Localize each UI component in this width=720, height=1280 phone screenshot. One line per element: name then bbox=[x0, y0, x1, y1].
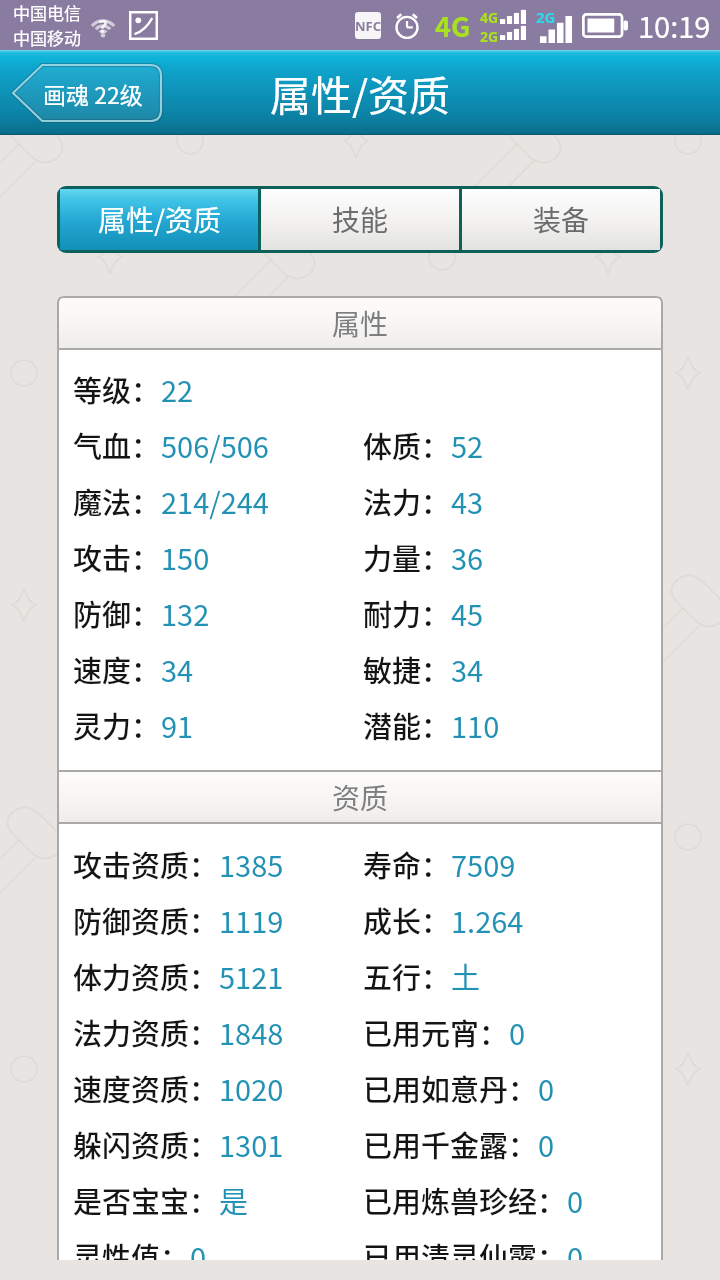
button[interactable]: 属性/资质 bbox=[60, 189, 258, 250]
staticText: 0 bbox=[538, 1067, 555, 1109]
staticText: 属性 bbox=[332, 303, 389, 344]
staticText: 132 bbox=[161, 592, 210, 634]
staticText: 已用如意丹： bbox=[363, 1067, 538, 1109]
staticText: 寿命： bbox=[363, 843, 451, 885]
staticText: 0 bbox=[509, 1011, 526, 1053]
button[interactable]: 返回 画魂 22级 bbox=[11, 63, 163, 123]
staticText: 150 bbox=[161, 536, 210, 578]
staticText: 攻击： bbox=[73, 536, 161, 578]
staticText: 资质 bbox=[332, 777, 389, 818]
staticText: 魔法： bbox=[73, 480, 161, 522]
staticText: 110 bbox=[451, 704, 500, 746]
staticText: 已用千金露： bbox=[363, 1123, 538, 1165]
staticText: 力量： bbox=[363, 536, 451, 578]
staticText: 装备 bbox=[533, 199, 590, 240]
staticText: 躲闪资质： bbox=[73, 1123, 219, 1165]
staticText: 1848 bbox=[219, 1011, 284, 1053]
staticText: 0 bbox=[190, 1235, 207, 1260]
staticText: 中国移动 bbox=[13, 25, 81, 50]
staticText: 是 bbox=[219, 1179, 249, 1221]
staticText: 体力资质： bbox=[73, 955, 219, 997]
button[interactable]: 技能 bbox=[261, 189, 459, 250]
staticText: 体质： bbox=[363, 424, 451, 466]
staticText: 5121 bbox=[219, 955, 284, 997]
staticText: 4G bbox=[480, 8, 499, 27]
staticText: 五行： bbox=[363, 955, 451, 997]
staticText: 潜能： bbox=[363, 704, 451, 746]
staticText: 灵性值： bbox=[73, 1235, 190, 1260]
staticText: 防御： bbox=[73, 592, 161, 634]
staticText: 2G bbox=[536, 7, 556, 27]
staticText: 灵力： bbox=[73, 704, 161, 746]
staticText: 34 bbox=[161, 648, 194, 690]
staticText: 速度资质： bbox=[73, 1067, 219, 1109]
staticText: 成长： bbox=[363, 899, 451, 941]
staticText: 技能 bbox=[332, 199, 389, 240]
staticText: 0 bbox=[567, 1179, 584, 1221]
staticText: 速度： bbox=[73, 648, 161, 690]
staticText: 画魂 22级 bbox=[43, 77, 143, 110]
staticText: 等级： bbox=[73, 368, 161, 410]
staticText: 中国电信 bbox=[13, 0, 81, 25]
staticText: 1301 bbox=[219, 1123, 284, 1165]
staticText: 0 bbox=[538, 1123, 555, 1165]
staticText: 91 bbox=[161, 704, 194, 746]
staticText: 法力资质： bbox=[73, 1011, 219, 1053]
staticText: ? bbox=[99, 15, 108, 38]
staticText: 2G bbox=[480, 27, 499, 42]
staticText: 1020 bbox=[219, 1067, 284, 1109]
staticText: 1385 bbox=[219, 843, 284, 885]
staticText: 45 bbox=[451, 592, 484, 634]
staticText: 43 bbox=[451, 480, 484, 522]
staticText: 506/506 bbox=[161, 424, 269, 466]
button[interactable]: 装备 bbox=[462, 189, 660, 250]
staticText: 10:19 bbox=[638, 4, 711, 46]
staticText: 22 bbox=[161, 368, 194, 410]
staticText: 属性/资质 bbox=[270, 63, 451, 122]
staticText: 属性/资质 bbox=[98, 199, 221, 240]
staticText: 防御资质： bbox=[73, 899, 219, 941]
staticText: 1119 bbox=[219, 899, 284, 941]
staticText: 耐力： bbox=[363, 592, 451, 634]
staticText: 是否宝宝： bbox=[73, 1179, 219, 1221]
staticText: 4G bbox=[435, 6, 471, 45]
staticText: 敏捷： bbox=[363, 648, 451, 690]
staticText: 攻击资质： bbox=[73, 843, 219, 885]
staticText: 7509 bbox=[451, 843, 516, 885]
staticText: 法力： bbox=[363, 480, 451, 522]
staticText: 已用炼兽珍经： bbox=[363, 1179, 567, 1221]
staticText: 52 bbox=[451, 424, 484, 466]
staticText: 已用元宵： bbox=[363, 1011, 509, 1053]
staticText: 土 bbox=[451, 955, 481, 997]
staticText: 34 bbox=[451, 648, 484, 690]
staticText: 1.264 bbox=[451, 899, 524, 941]
staticText: 0 bbox=[567, 1235, 584, 1260]
staticText: 气血： bbox=[73, 424, 161, 466]
staticText: 36 bbox=[451, 536, 484, 578]
staticText: NFC bbox=[355, 17, 381, 35]
staticText: 214/244 bbox=[161, 480, 269, 522]
staticText: 已用清灵仙露： bbox=[363, 1235, 567, 1260]
